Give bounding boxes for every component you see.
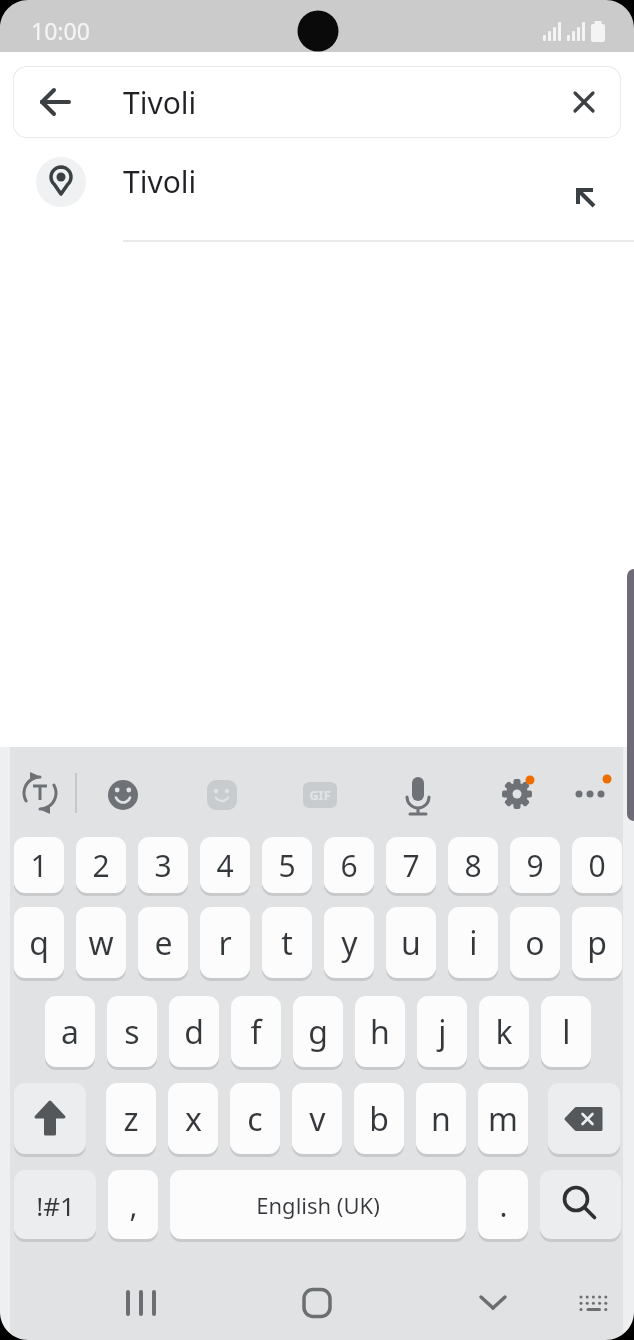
button[interactable]: 3 [138, 837, 188, 894]
button[interactable] [548, 1083, 620, 1155]
button[interactable]: 4 [200, 837, 250, 894]
button[interactable] [556, 74, 612, 130]
staticText: k [495, 1010, 513, 1054]
button[interactable] [290, 763, 350, 823]
button[interactable]: 9 [510, 837, 560, 894]
staticText: r [218, 921, 232, 965]
staticText: . [499, 1185, 508, 1226]
staticText: e [154, 921, 173, 965]
button[interactable]: y [324, 907, 374, 979]
staticText: 4 [216, 845, 234, 886]
button[interactable]: , [108, 1170, 158, 1240]
button[interactable] [27, 74, 83, 130]
button[interactable]: s [107, 996, 157, 1068]
staticText: x [185, 1097, 202, 1141]
button[interactable]: k [479, 996, 529, 1068]
button[interactable]: d [169, 996, 219, 1068]
button[interactable]: 5 [262, 837, 312, 894]
button[interactable] [93, 763, 153, 823]
staticText: p [587, 921, 607, 965]
staticText: Tivoli [123, 161, 197, 202]
staticText: 1 [30, 845, 48, 886]
button[interactable]: r [200, 907, 250, 979]
button[interactable]: English (UK) [170, 1170, 466, 1240]
button[interactable] [487, 763, 547, 823]
staticText: z [123, 1097, 139, 1141]
button[interactable] [192, 763, 252, 823]
staticText: Tivoli [123, 82, 197, 123]
staticText: f [250, 1010, 262, 1054]
staticText: q [29, 921, 49, 965]
button[interactable]: 1 [14, 837, 64, 894]
staticText: 5 [278, 845, 296, 886]
button[interactable]: z [106, 1083, 156, 1155]
staticText: , [129, 1185, 138, 1226]
staticText: 8 [464, 845, 482, 886]
staticText: t [281, 921, 293, 965]
button[interactable]: x [168, 1083, 218, 1155]
staticText: 7 [402, 845, 420, 886]
button[interactable]: h [355, 996, 405, 1068]
staticText: 2 [92, 845, 110, 886]
staticText: GIF [309, 786, 331, 804]
button[interactable]: o [510, 907, 560, 979]
button[interactable]: 2 [76, 837, 126, 894]
button[interactable]: b [354, 1083, 404, 1155]
button[interactable]: a [45, 996, 95, 1068]
button[interactable]: u [386, 907, 436, 979]
staticText: y [341, 921, 358, 965]
button[interactable]: f [231, 996, 281, 1068]
staticText: a [61, 1010, 79, 1054]
button[interactable]: m [478, 1083, 528, 1155]
button[interactable] [458, 1268, 528, 1338]
staticText: w [88, 921, 114, 965]
button[interactable] [10, 763, 70, 823]
staticText: d [184, 1010, 204, 1054]
button[interactable]: p [572, 907, 622, 979]
button[interactable]: t [262, 907, 312, 979]
button[interactable]: !#1 [14, 1170, 96, 1240]
button[interactable] [105, 1268, 175, 1338]
button[interactable] [563, 1268, 633, 1338]
button[interactable]: e [138, 907, 188, 979]
staticText: !#1 [36, 1188, 75, 1223]
button[interactable]: . [478, 1170, 528, 1240]
button[interactable] [540, 1170, 621, 1240]
button[interactable]: 8 [448, 837, 498, 894]
staticText: 10:00 [31, 15, 90, 46]
button[interactable]: w [76, 907, 126, 979]
button[interactable]: n [416, 1083, 466, 1155]
staticText: n [431, 1097, 451, 1141]
button[interactable]: c [230, 1083, 280, 1155]
staticText: 9 [526, 845, 544, 886]
button[interactable]: q [14, 907, 64, 979]
button[interactable]: l [541, 996, 591, 1068]
button[interactable]: j [417, 996, 467, 1068]
button[interactable]: 0 [572, 837, 622, 894]
staticText: 0 [588, 845, 606, 886]
button[interactable] [14, 1083, 86, 1155]
staticText: v [309, 1097, 326, 1141]
button[interactable]: 6 [324, 837, 374, 894]
button[interactable] [282, 1268, 352, 1338]
staticText: s [124, 1010, 140, 1054]
staticText: h [370, 1010, 390, 1054]
staticText: o [525, 921, 545, 965]
button[interactable] [13, 66, 621, 138]
button[interactable]: v [292, 1083, 342, 1155]
staticText: English (UK) [256, 1190, 380, 1220]
button[interactable] [388, 763, 448, 823]
button[interactable] [560, 763, 620, 823]
staticText: l [562, 1010, 571, 1054]
staticText: i [469, 921, 478, 965]
button[interactable]: g [293, 996, 343, 1068]
staticText: 6 [340, 845, 358, 886]
staticText: j [438, 1010, 447, 1054]
staticText: g [308, 1010, 328, 1054]
button[interactable]: i [448, 907, 498, 979]
staticText: u [401, 921, 421, 965]
staticText: b [369, 1097, 389, 1141]
staticText: 3 [154, 845, 172, 886]
button[interactable]: 7 [386, 837, 436, 894]
button[interactable] [0, 146, 634, 242]
